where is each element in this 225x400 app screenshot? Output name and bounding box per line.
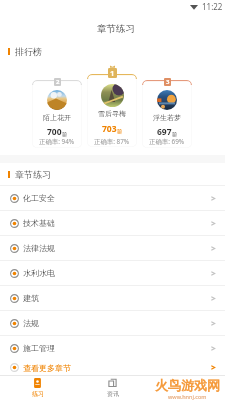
staticText: 法律法规 [23,243,55,253]
button[interactable]: 资讯 [75,376,150,400]
staticText: 11:22 [202,1,223,12]
staticText: 题 [117,128,122,134]
staticText: 正确率: 94% [39,137,75,146]
button[interactable]: 建筑 [0,286,225,310]
button[interactable]: 法规 [0,311,225,335]
button[interactable]: 技术基础 [0,211,225,235]
button[interactable]: 施工管理 [0,336,225,360]
staticText: 火鸟游戏网 [155,377,220,393]
staticText: 章节练习 [15,169,51,180]
button[interactable]: 化工安全 [0,186,225,210]
staticText: 2 [56,78,60,86]
staticText: 浮生若梦 [153,113,181,122]
staticText: 技术基础 [23,218,55,228]
staticText: 陌上花开 [43,113,71,122]
staticText: 697 [157,126,172,138]
button[interactable]: 浮生若梦 [142,80,192,148]
staticText: 3 [166,78,170,86]
staticText: 建筑 [23,293,39,303]
staticText: 水利水电 [23,268,55,278]
staticText: 703 [102,123,117,135]
button[interactable]: 练习 [0,376,75,400]
staticText: 练习 [32,390,44,398]
button[interactable]: 水利水电 [0,261,225,285]
staticText: 排行榜 [15,46,42,57]
staticText: 施工管理 [23,343,55,353]
staticText: 正确率: 69% [149,137,185,146]
staticText: 题 [172,131,177,137]
staticText: 雪后寻梅 [98,109,126,118]
button[interactable]: 查看更多章节 [0,360,225,375]
staticText: www.hnnj.com [168,393,207,400]
button[interactable]: 陌上花开 [32,80,82,148]
staticText: 正确率: 87% [94,137,130,146]
staticText: 法规 [23,318,39,328]
staticText: 700 [47,126,62,138]
staticText: 章节练习 [97,23,135,35]
staticText: 资讯 [107,390,119,398]
staticText: 查看更多章节 [23,363,71,373]
staticText: 题 [62,131,67,137]
button[interactable]: 雪后寻梅 [87,74,137,147]
staticText: 1 [110,68,115,78]
button[interactable]: 法律法规 [0,236,225,260]
staticText: 化工安全 [23,193,55,203]
